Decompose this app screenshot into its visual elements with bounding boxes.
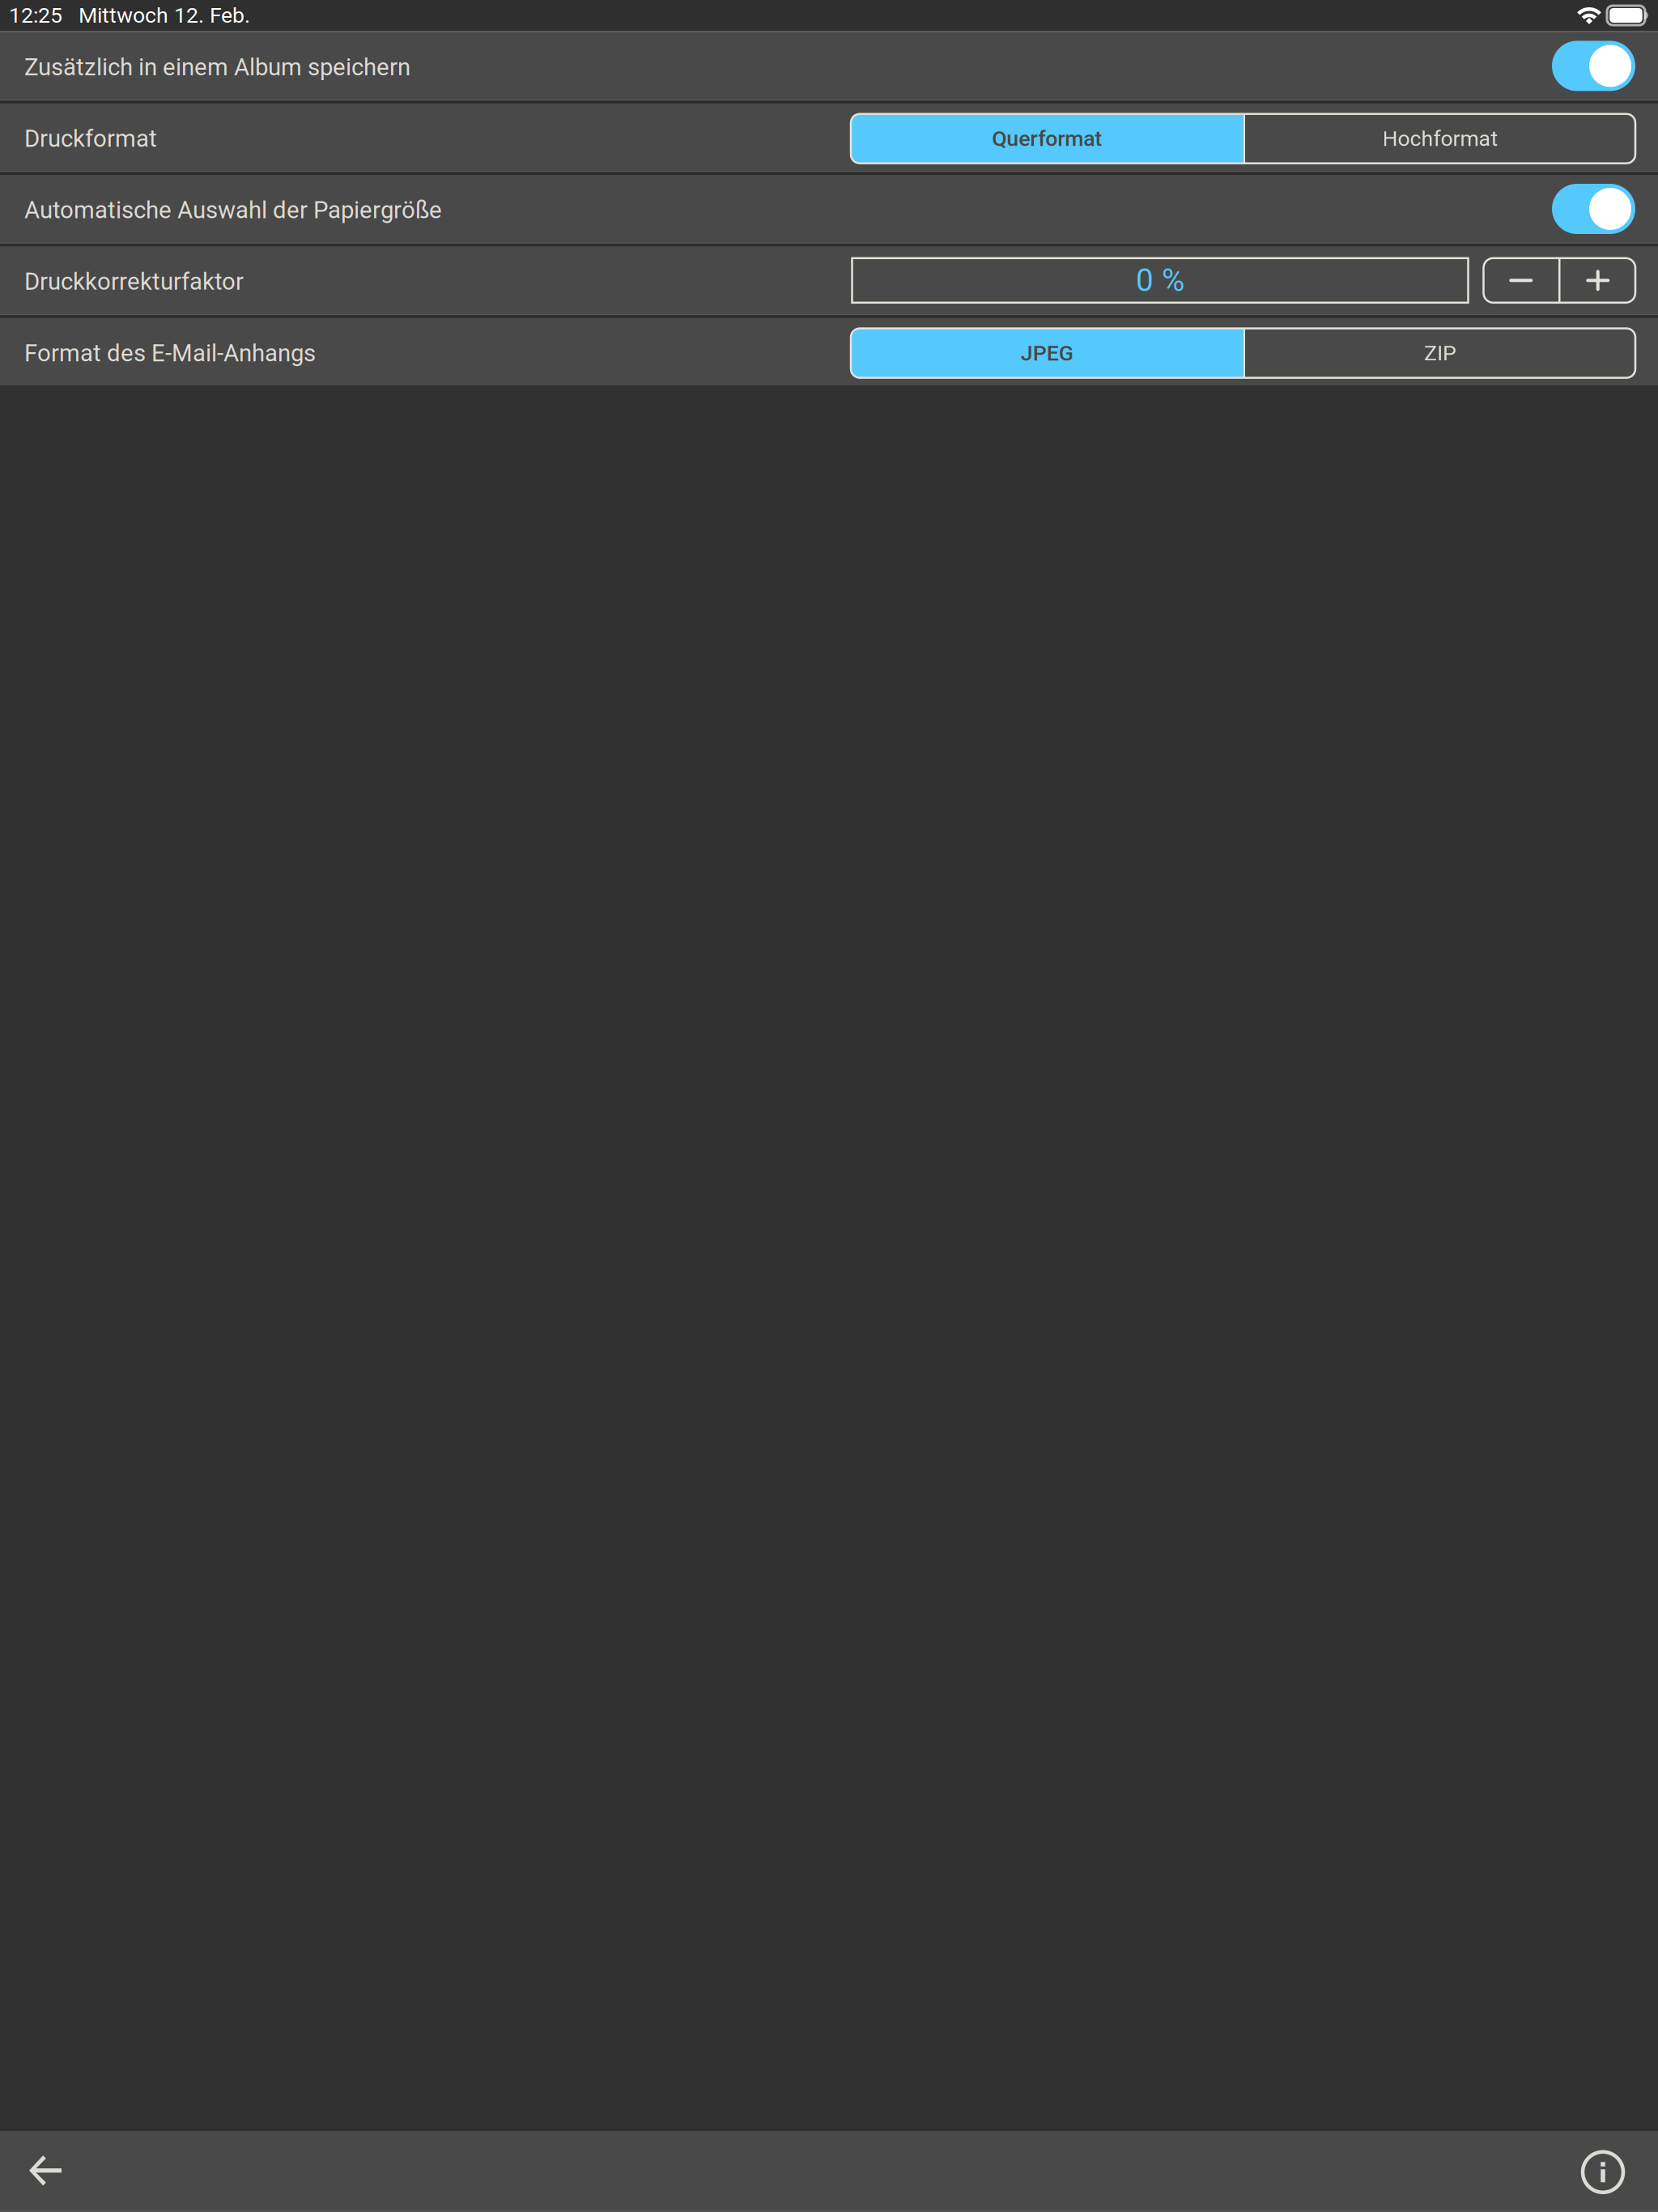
button[interactable]: Increase [1560,258,1635,303]
staticText: Format des E-Mail-Anhangs [24,339,316,367]
staticText: Zusätzlich in einem Album speichern [24,53,410,81]
button[interactable]: Decrease [1484,258,1558,303]
staticText: Druckkorrekturfaktor [24,268,244,296]
button[interactable]: ZIP [1245,328,1635,378]
button[interactable]: Info [1568,2131,1625,2210]
button[interactable]: Back [29,2131,86,2210]
button[interactable]: Hochformat [1245,114,1635,163]
staticText: JPEG [1021,340,1073,366]
button[interactable]: Querformat [851,114,1243,163]
staticText: Querformat [992,126,1102,151]
button[interactable]: JPEG [851,328,1243,378]
button[interactable]: Zusätzlich in einem Album speichern [1552,41,1635,91]
staticText: 12:25 [9,3,62,28]
staticText: Automatische Auswahl der Papiergröße [24,196,442,224]
staticText: Mittwoch 12. Feb. [79,3,250,28]
staticText: Druckformat [24,125,157,153]
staticText: 0 % [1136,262,1184,299]
staticText: Hochformat [1382,126,1498,151]
button[interactable]: Automatische Auswahl der Papiergröße [1552,184,1635,234]
staticText: ZIP [1424,340,1456,366]
